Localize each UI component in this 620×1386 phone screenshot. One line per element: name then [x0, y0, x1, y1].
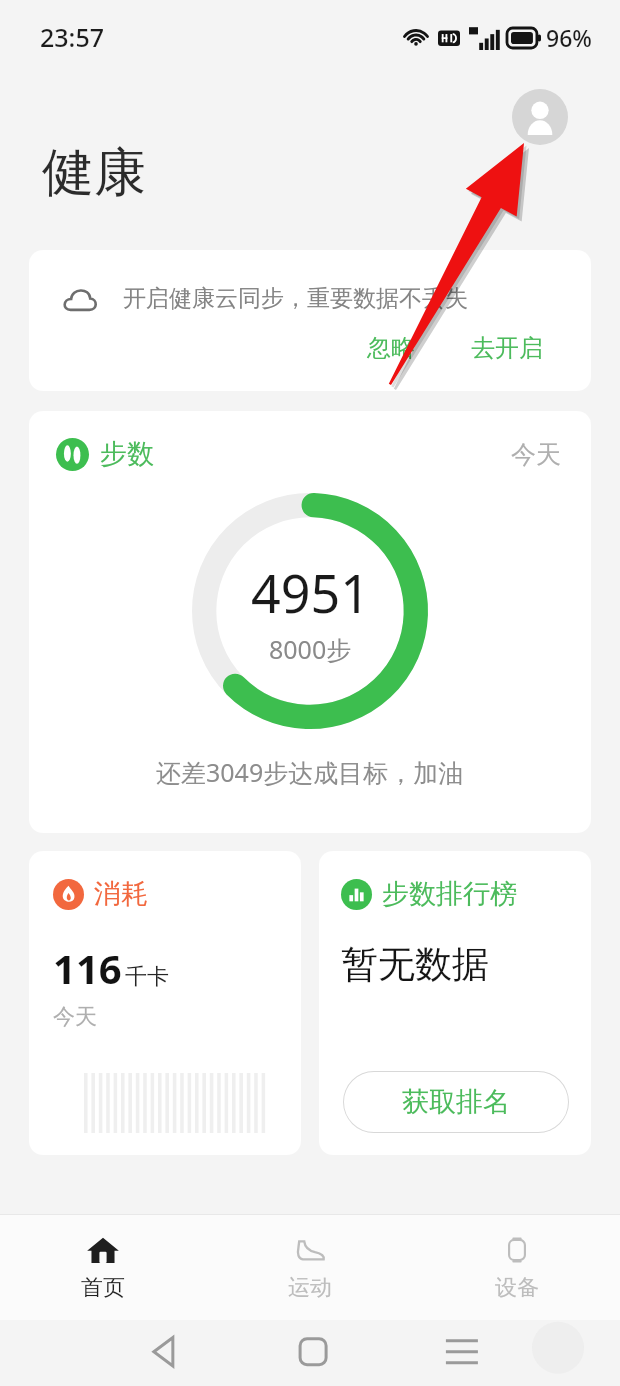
button[interactable]: 去开启 [461, 327, 553, 369]
staticText: 8000步 [269, 632, 352, 666]
staticText: 今天 [511, 439, 561, 470]
button[interactable]: 运动 [206, 1214, 413, 1320]
staticText: 116 [53, 941, 122, 995]
button[interactable]: 开启健康云同步，重要数据不丢失 [29, 250, 591, 391]
staticText: 忽略 [367, 333, 415, 363]
staticText: 消耗 [94, 877, 148, 911]
button[interactable]: 步数 [29, 411, 591, 833]
button[interactable]: 获取排名 [343, 1071, 569, 1133]
button[interactable]: 设备 [413, 1214, 620, 1320]
staticText: 设备 [495, 1274, 539, 1302]
staticText: 暂无数据 [341, 941, 489, 988]
staticText: 去开启 [471, 333, 543, 363]
staticText: 获取排名 [402, 1085, 510, 1119]
staticText: 健康 [42, 140, 146, 206]
staticText: 今天 [53, 1003, 97, 1031]
staticText: 还差3049步达成目标，加油 [156, 755, 464, 789]
staticText: 运动 [288, 1274, 332, 1302]
staticText: 4951 [251, 557, 370, 628]
staticText: 千卡 [125, 963, 169, 991]
staticText: 开启健康云同步，重要数据不丢失 [123, 284, 468, 313]
staticText: 首页 [81, 1274, 125, 1302]
button[interactable]: 首页 [0, 1214, 206, 1320]
staticText: 23:57 [40, 20, 105, 54]
staticText: 步数 [100, 437, 154, 471]
button[interactable]: 步数排行榜 [319, 851, 591, 1155]
button[interactable]: Profile [512, 89, 568, 145]
staticText: 步数排行榜 [382, 877, 517, 911]
button[interactable]: 消耗 [29, 851, 301, 1155]
button[interactable]: 忽略 [357, 327, 425, 369]
staticText: 96% [546, 22, 592, 53]
